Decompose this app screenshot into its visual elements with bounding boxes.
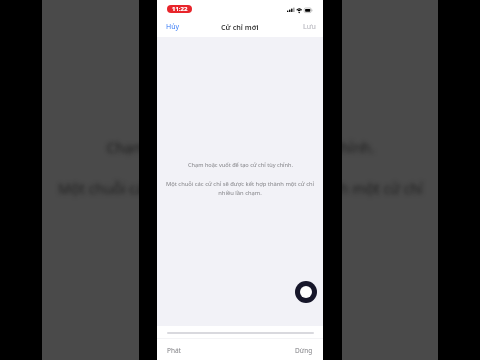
- button[interactable]: Screen recording, 11:22: [167, 5, 192, 13]
- other: Cellular, Wi-Fi and battery status: [287, 7, 313, 15]
- button[interactable]: Phát: [157, 343, 187, 357]
- staticText: Cử chỉ mới: [221, 22, 259, 32]
- staticText: Một chuỗi các cử chỉ sẽ được kết hợp thà…: [162, 180, 318, 197]
- staticText: Lưu: [303, 22, 316, 32]
- staticText: Phát: [167, 346, 181, 355]
- staticText: Dừng: [295, 346, 313, 355]
- button[interactable]: Lưu: [297, 20, 323, 34]
- button[interactable]: Hủy: [157, 20, 186, 34]
- staticText: Hủy: [166, 22, 180, 32]
- staticText: 11:22: [172, 5, 188, 13]
- staticText: Chạm hoặc vuốt để tạo cử chỉ tùy chỉnh.: [106, 138, 375, 157]
- staticText: Chạm hoặc vuốt để tạo cử chỉ tùy chỉnh.: [188, 161, 293, 169]
- button[interactable]: Record gesture: [295, 281, 317, 303]
- button[interactable]: Dừng: [289, 343, 323, 357]
- staticText: Một chuỗi các cử chỉ sẽ được kết hợp thà…: [58, 179, 423, 198]
